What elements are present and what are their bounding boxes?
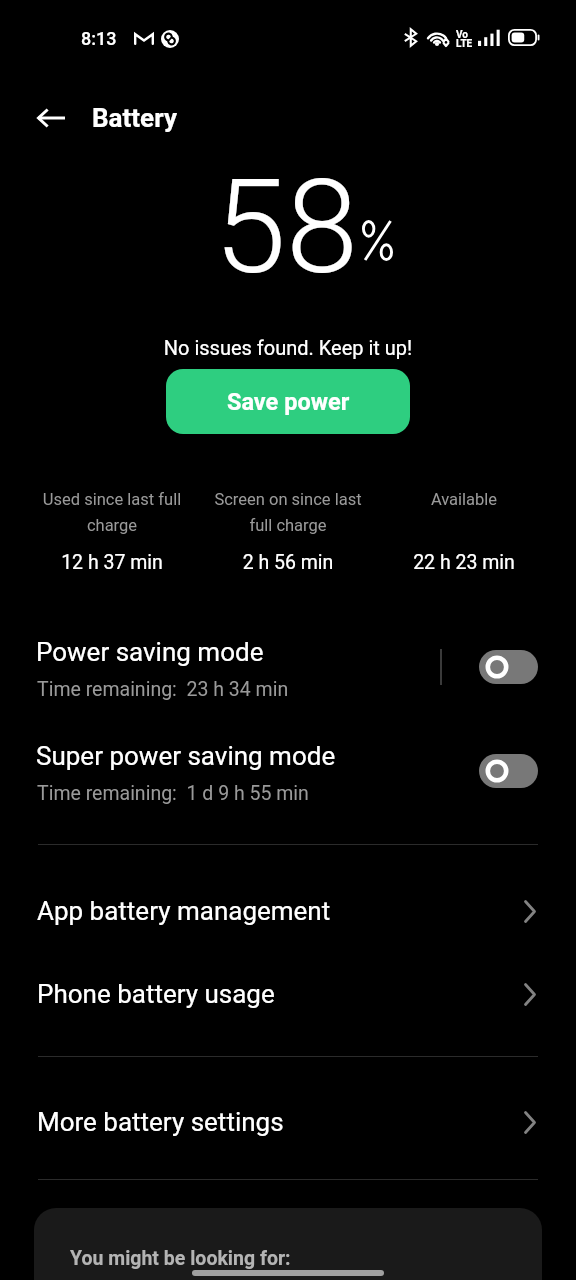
staticText: Time remaining: 23 h 34 min [37,678,289,701]
staticText: Time remaining: 1 d 9 h 55 min [37,782,309,805]
staticText: More battery settings [37,1107,284,1137]
staticText: Phone battery usage [37,979,275,1009]
staticText: 22 h 23 min [376,551,552,574]
staticText: Save power [227,388,350,416]
staticText: App battery management [37,896,331,926]
staticText: No issues found. Keep it up! [0,336,576,359]
staticText: LTE [456,38,473,50]
button[interactable]: More battery settings [0,1091,576,1153]
button[interactable]: You might be looking for: [34,1208,542,1280]
staticText: Battery [92,103,177,133]
button[interactable]: Save power [166,369,410,434]
staticText: 8:13 [81,28,117,49]
staticText: You might be looking for: [70,1247,291,1270]
staticText: Used since last full charge [26,490,198,535]
button[interactable]: App battery management [0,880,576,942]
staticText: Screen on since last full charge [202,490,374,535]
staticText: 58 [214,151,359,303]
button[interactable]: Power saving mode [0,630,576,708]
button[interactable]: Back [28,95,74,141]
button[interactable]: Super power saving mode [0,734,576,812]
button[interactable]: Phone battery usage [0,963,576,1025]
staticText: 2 h 56 min [200,551,376,574]
staticText: Vo [456,29,468,41]
staticText: Super power saving mode [36,741,336,771]
button[interactable]: Toggle [479,650,538,684]
staticText: 12 h 37 min [24,551,200,574]
button[interactable]: Toggle [479,754,538,788]
staticText: Power saving mode [36,637,264,667]
staticText: Available [378,490,550,509]
